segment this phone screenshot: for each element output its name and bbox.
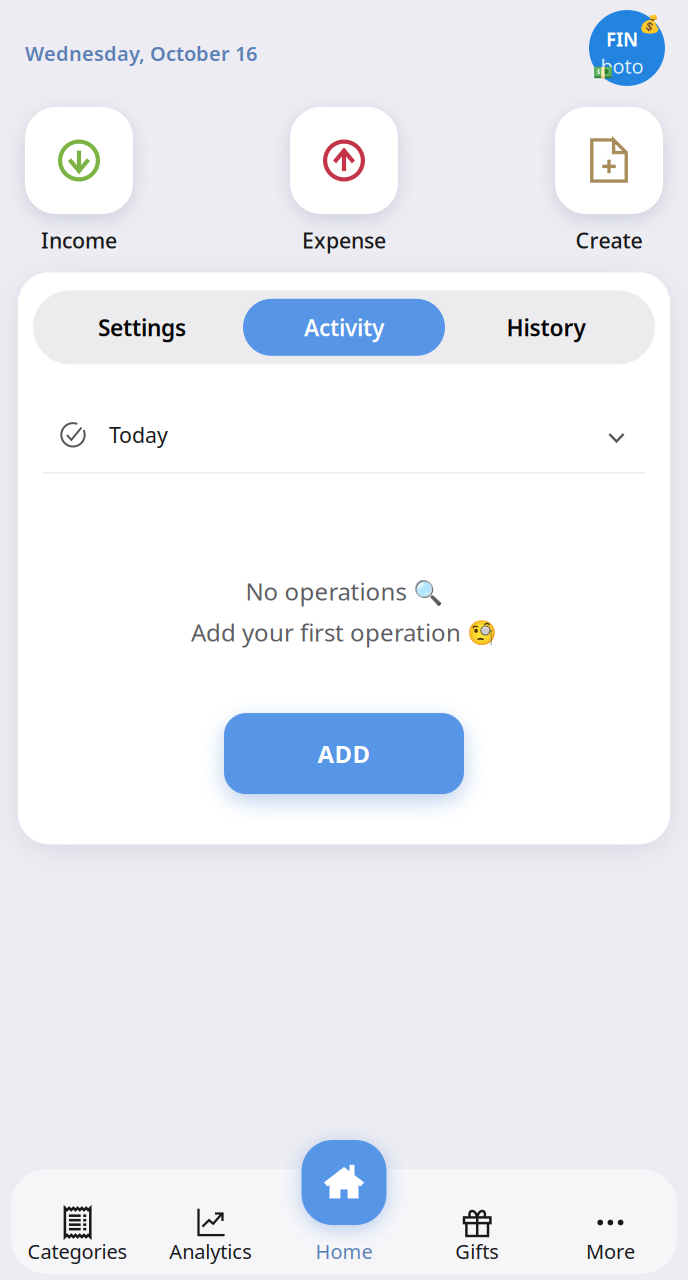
staticText: FIN xyxy=(606,27,638,52)
staticText: Gifts xyxy=(455,1238,499,1265)
button[interactable]: Categories xyxy=(11,1207,144,1265)
button[interactable]: ADD xyxy=(224,713,464,794)
button[interactable]: History xyxy=(445,295,647,359)
button[interactable]: Gifts xyxy=(411,1207,544,1265)
staticText: Wednesday, October 16 xyxy=(25,40,257,67)
button[interactable]: Home xyxy=(301,1140,386,1225)
staticText: boto xyxy=(600,53,643,79)
staticText: Activity xyxy=(304,312,384,342)
button[interactable]: More xyxy=(544,1207,677,1265)
staticText: 💵 xyxy=(593,64,613,82)
button[interactable]: Income xyxy=(25,107,133,256)
staticText: 💰 xyxy=(639,14,661,34)
staticText: Add your first operation 🧐 xyxy=(191,616,497,648)
staticText: More xyxy=(586,1238,635,1265)
staticText: Create xyxy=(575,226,642,254)
staticText: Home xyxy=(315,1238,372,1265)
button[interactable]: Today xyxy=(18,397,670,472)
button[interactable]: Analytics xyxy=(144,1207,277,1265)
staticText: Today xyxy=(109,421,168,449)
staticText: Income xyxy=(41,226,117,254)
staticText: Expense xyxy=(302,226,386,254)
button[interactable]: Create xyxy=(555,107,663,256)
button[interactable]: Settings xyxy=(41,295,243,359)
staticText: No operations 🔍 xyxy=(245,575,442,607)
staticText: Settings xyxy=(98,312,186,342)
button[interactable]: Profile xyxy=(589,10,665,86)
staticText: ADD xyxy=(317,738,370,769)
staticText: History xyxy=(506,312,585,342)
staticText: Analytics xyxy=(169,1238,252,1265)
button[interactable]: Expense xyxy=(290,107,398,256)
button[interactable]: Activity xyxy=(243,299,445,356)
staticText: Categories xyxy=(28,1238,128,1265)
